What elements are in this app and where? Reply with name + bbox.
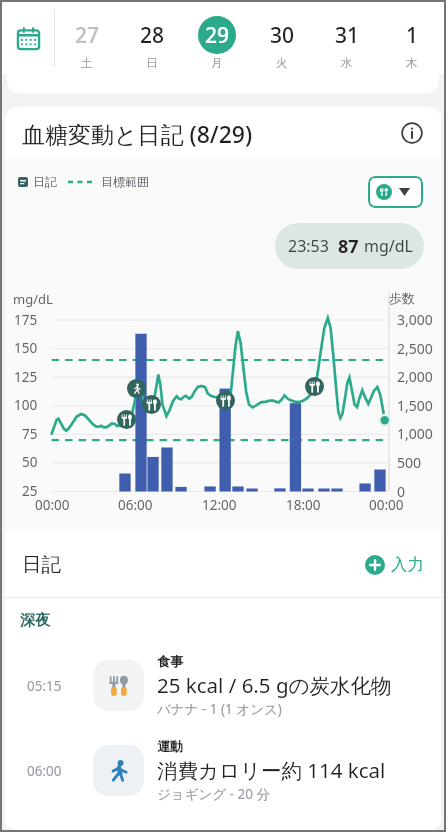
button[interactable]: Calendar (2, 2, 54, 74)
staticText: 50 (22, 453, 38, 471)
staticText: 2,000 (397, 367, 433, 386)
button[interactable]: Meal entry (117, 410, 136, 429)
staticText: 1 (406, 21, 419, 50)
staticText: 1,500 (397, 396, 433, 415)
staticText: mg/dL (13, 290, 53, 308)
staticText: 運動 (157, 738, 183, 754)
button[interactable]: Meal entry (216, 391, 235, 410)
staticText: 150 (14, 339, 38, 357)
staticText: 12:00 (202, 496, 237, 514)
staticText: 29 (205, 21, 230, 50)
staticText: 125 (14, 368, 38, 386)
staticText: 月 (211, 56, 223, 70)
staticText: 500 (397, 453, 422, 472)
staticText: ジョギング - 20 分 (157, 785, 270, 803)
button[interactable]: 27 (55, 7, 119, 70)
staticText: 歩数 (389, 290, 415, 306)
staticText: 00:00 (369, 496, 404, 514)
staticText: 87 (338, 234, 359, 259)
button[interactable]: 23:53 (275, 223, 424, 269)
button[interactable]: Meal entry (142, 395, 161, 414)
staticText: 火 (276, 56, 288, 70)
staticText: 土 (81, 56, 93, 70)
staticText: 31 (335, 21, 360, 50)
staticText: 日記 (33, 174, 57, 189)
button[interactable]: Info (397, 118, 427, 148)
staticText: 06:00 (118, 496, 153, 514)
staticText: 血糖変動と日記 (8/29) (22, 118, 253, 149)
button[interactable]: 1 (379, 7, 444, 70)
staticText: 消費カロリー約 114 kcal (157, 756, 386, 784)
staticText: 05:15 (27, 677, 62, 695)
staticText: 食事 (157, 653, 183, 669)
staticText: 28 (140, 21, 165, 50)
button[interactable]: 28 (119, 7, 184, 70)
staticText: 27 (75, 21, 100, 50)
staticText: 目標範囲 (101, 174, 149, 189)
button[interactable]: Filter meals (368, 176, 423, 208)
staticText: 00:00 (35, 496, 70, 514)
staticText: 0 (397, 482, 406, 501)
staticText: バナナ - 1 (1 オンス) (157, 700, 282, 718)
staticText: 水 (341, 56, 353, 70)
staticText: 75 (22, 425, 38, 443)
button[interactable]: Meal entry (305, 377, 324, 396)
staticText: mg/dL (364, 235, 413, 257)
button[interactable]: 05:15 (5, 643, 441, 728)
staticText: 25 (22, 482, 38, 500)
button[interactable]: Exercise entry (127, 379, 146, 398)
staticText: 100 (14, 396, 38, 414)
staticText: 入力 (391, 554, 424, 575)
staticText: 木 (406, 56, 418, 70)
staticText: 06:00 (27, 762, 62, 780)
staticText: 2,500 (397, 339, 433, 358)
staticText: 25 kcal / 6.5 gの炭水化物 (157, 671, 392, 699)
staticText: 30 (270, 21, 295, 50)
staticText: 1,000 (397, 424, 433, 443)
button[interactable]: 31 (314, 7, 379, 70)
button[interactable]: 06:00 (5, 728, 441, 813)
button[interactable]: 入力 (361, 550, 428, 579)
staticText: 23:53 (288, 235, 329, 257)
button[interactable]: 30 (249, 7, 314, 70)
staticText: 日記 (22, 552, 61, 577)
staticText: 日 (146, 56, 158, 70)
staticText: 3,000 (397, 310, 433, 329)
button[interactable]: 29 (184, 7, 249, 70)
staticText: 18:00 (286, 496, 321, 514)
staticText: 175 (14, 311, 38, 329)
staticText: 深夜 (20, 611, 50, 630)
